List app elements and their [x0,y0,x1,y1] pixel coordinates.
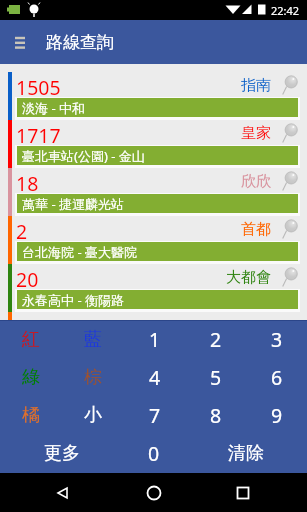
staticText: 紅 [22,328,40,351]
button[interactable]: 0 [123,434,184,472]
button[interactable]: 更多 [0,434,123,472]
button[interactable]: Menu [0,22,40,62]
staticText: 清除 [228,442,264,465]
button[interactable]: 18 [0,168,307,216]
button[interactable]: 7 [124,396,185,434]
staticText: 棕 [84,366,102,389]
button[interactable]: Home [134,473,174,512]
staticText: 20 [16,266,39,291]
staticText: 9 [271,402,283,429]
staticText: 皇家 [241,124,271,143]
staticText: 指南 [241,76,271,95]
staticText: 欣欣 [241,172,271,191]
staticText: 藍 [84,328,102,351]
button[interactable]: 4 [124,358,185,396]
staticText: 更多 [44,442,80,465]
staticText: 7 [149,402,161,429]
button[interactable]: 8 [185,396,246,434]
staticText: 萬華 - 捷運麟光站 [22,195,124,213]
button[interactable]: 20 [0,264,307,312]
button[interactable]: 綠 [0,358,62,396]
other: Pin route [281,73,301,93]
staticText: 淡海 - 中和 [22,99,85,117]
staticText: 5 [210,364,222,391]
other: Pin route [281,169,301,189]
button[interactable]: 9 [246,396,307,434]
button[interactable]: 2 [0,216,307,264]
staticText: 永春高中 - 衡陽路 [22,291,124,309]
button[interactable]: 5 [185,358,246,396]
staticText: 0 [148,440,160,467]
staticText: 2 [16,218,28,243]
staticText: 3 [271,326,283,353]
staticText: 8 [210,402,222,429]
staticText: 4 [149,364,161,391]
staticText: 台北海院 - 臺大醫院 [22,243,137,261]
staticText: 6 [271,364,283,391]
button[interactable]: 清除 [184,434,307,472]
staticText: 首都 [241,220,271,239]
button[interactable]: 1717 [0,120,307,168]
staticText: 橘 [22,404,40,427]
staticText: 22:42 [271,3,300,18]
button[interactable]: 小 [62,396,124,434]
button[interactable]: 紅 [0,320,62,358]
staticText: 路線查詢 [46,32,114,53]
staticText: 臺北車站(公園) - 金山 [22,147,145,165]
staticText: 大都會 [226,268,271,287]
staticText: 18 [16,170,39,195]
staticText: 1505 [16,74,61,99]
button[interactable]: 藍 [62,320,124,358]
other: Pin route [281,121,301,141]
button[interactable]: Back [42,473,82,512]
button[interactable]: 3 [246,320,307,358]
staticText: 2 [210,326,222,353]
other: Pin route [281,265,301,285]
button[interactable]: 1 [124,320,185,358]
other: Pin route [281,217,301,237]
button[interactable]: 棕 [62,358,124,396]
button[interactable]: 橘 [0,396,62,434]
button[interactable]: Recents [223,473,263,512]
button[interactable]: 2 [185,320,246,358]
staticText: 綠 [22,366,40,389]
staticText: 小 [84,404,102,427]
staticText: 1717 [16,122,61,147]
staticText: 1 [149,326,161,353]
button[interactable]: 1505 [0,72,307,120]
button[interactable]: 6 [246,358,307,396]
